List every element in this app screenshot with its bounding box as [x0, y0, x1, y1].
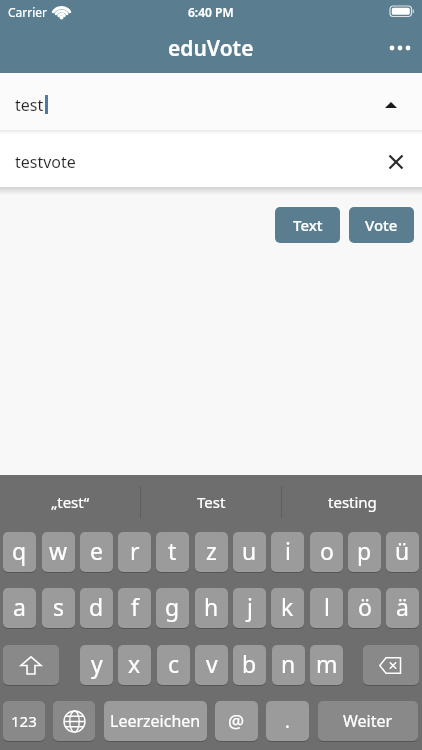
staticText: w: [49, 535, 68, 566]
staticText: j: [247, 591, 253, 622]
button[interactable]: [3, 645, 59, 685]
button[interactable]: w: [42, 532, 75, 572]
staticText: eduVote: [168, 34, 254, 63]
button[interactable]: ü: [386, 532, 419, 572]
staticText: c: [168, 648, 180, 679]
staticText: ü: [395, 535, 410, 566]
staticText: ö: [358, 591, 372, 622]
staticText: Text: [293, 215, 323, 235]
staticText: Test: [197, 492, 226, 512]
staticText: b: [242, 648, 257, 679]
button[interactable]: ä: [386, 588, 419, 628]
staticText: g: [165, 591, 180, 622]
button[interactable]: n: [272, 645, 305, 685]
button[interactable]: Test: [141, 475, 281, 528]
staticText: v: [206, 648, 218, 679]
button[interactable]: o: [310, 532, 343, 572]
staticText: „test“: [51, 492, 90, 512]
staticText: m: [316, 648, 338, 679]
button[interactable]: j: [233, 588, 266, 628]
staticText: @: [228, 709, 245, 734]
staticText: k: [281, 591, 294, 622]
button[interactable]: z: [195, 532, 228, 572]
staticText: f: [131, 591, 139, 622]
staticText: test: [15, 94, 44, 116]
staticText: q: [12, 535, 27, 566]
staticText: d: [89, 591, 104, 622]
button[interactable]: b: [233, 645, 266, 685]
staticText: a: [13, 591, 26, 622]
button[interactable]: c: [157, 645, 190, 685]
button[interactable]: s: [42, 588, 75, 628]
staticText: x: [128, 648, 141, 679]
staticText: z: [206, 535, 217, 566]
button[interactable]: t: [156, 532, 189, 572]
button[interactable]: „test“: [0, 475, 140, 528]
button[interactable]: Leerzeichen: [104, 701, 207, 741]
button[interactable]: e: [80, 532, 113, 572]
button[interactable]: [53, 701, 95, 741]
button[interactable]: x: [118, 645, 151, 685]
button[interactable]: .: [266, 701, 309, 741]
button[interactable]: 123: [3, 701, 45, 741]
staticText: ä: [396, 591, 409, 622]
staticText: Leerzeichen: [110, 710, 201, 732]
button[interactable]: d: [80, 588, 113, 628]
staticText: i: [285, 535, 291, 566]
button[interactable]: @: [215, 701, 258, 741]
staticText: 6:40 PM: [188, 4, 234, 20]
button[interactable]: test: [0, 73, 422, 130]
staticText: 123: [11, 711, 37, 731]
button[interactable]: f: [118, 588, 151, 628]
staticText: n: [281, 648, 296, 679]
button[interactable]: i: [271, 532, 304, 572]
staticText: Weiter: [343, 710, 393, 732]
button[interactable]: k: [271, 588, 304, 628]
staticText: r: [130, 535, 140, 566]
staticText: testvote: [15, 151, 76, 173]
staticText: Carrier: [8, 4, 48, 20]
button[interactable]: testing: [282, 475, 422, 528]
button[interactable]: q: [3, 532, 36, 572]
button[interactable]: testvote: [0, 130, 422, 187]
staticText: o: [320, 535, 334, 566]
staticText: p: [357, 535, 372, 566]
staticText: u: [242, 535, 257, 566]
button[interactable]: g: [156, 588, 189, 628]
button[interactable]: Weiter: [318, 701, 418, 741]
button[interactable]: l: [310, 588, 343, 628]
button[interactable]: h: [195, 588, 228, 628]
staticText: t: [168, 535, 177, 566]
button[interactable]: ö: [348, 588, 381, 628]
staticText: y: [91, 648, 103, 679]
button[interactable]: [363, 645, 419, 685]
button[interactable]: v: [195, 645, 228, 685]
button[interactable]: Vote: [349, 207, 414, 243]
button[interactable]: r: [118, 532, 151, 572]
staticText: Vote: [365, 215, 398, 235]
button[interactable]: y: [80, 645, 113, 685]
button[interactable]: [378, 26, 422, 70]
button[interactable]: m: [310, 645, 343, 685]
staticText: s: [53, 591, 65, 622]
button[interactable]: u: [233, 532, 266, 572]
staticText: e: [90, 535, 103, 566]
button[interactable]: Text: [275, 207, 340, 243]
staticText: .: [285, 709, 290, 734]
staticText: testing: [328, 492, 377, 512]
staticText: l: [324, 591, 330, 622]
button[interactable]: p: [348, 532, 381, 572]
button[interactable]: a: [3, 588, 36, 628]
staticText: h: [204, 591, 219, 622]
